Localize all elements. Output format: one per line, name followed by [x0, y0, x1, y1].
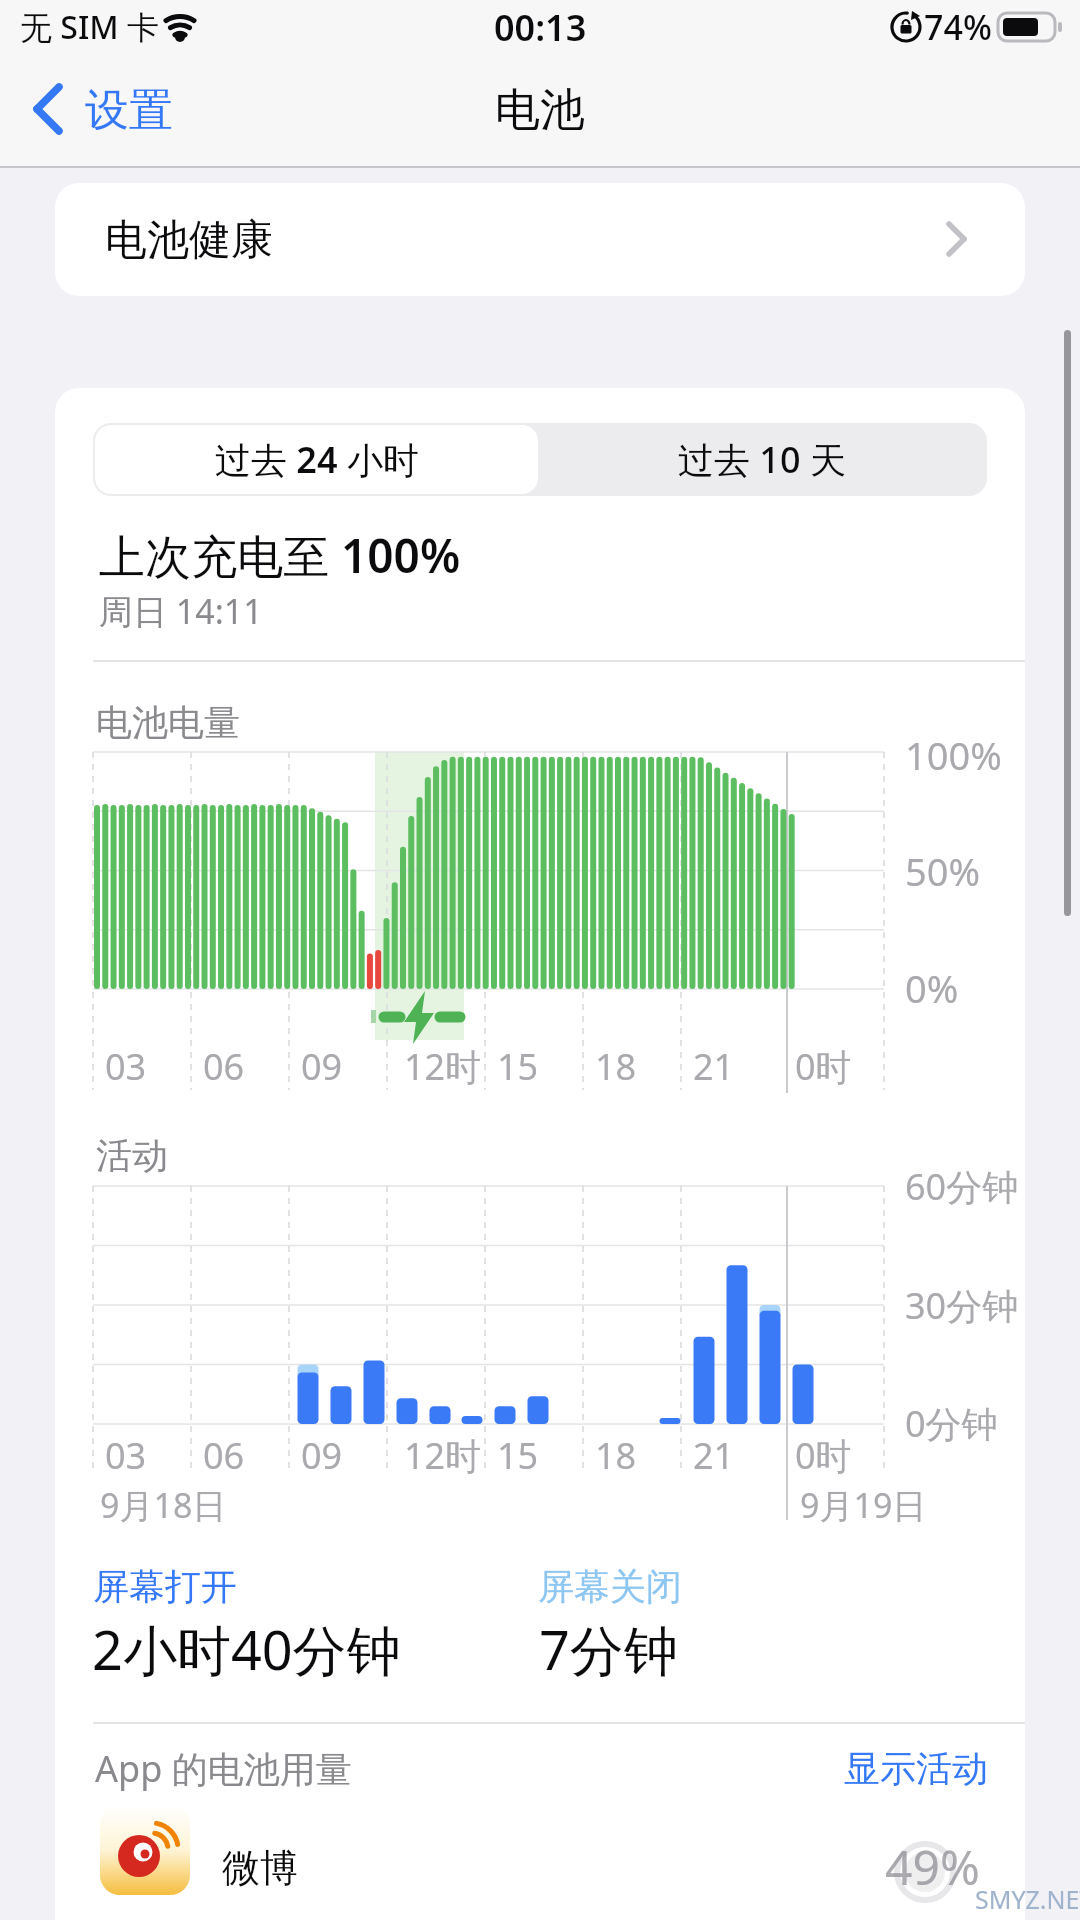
- staticText: 18: [595, 1042, 637, 1091]
- staticText: 显示活动: [844, 1746, 988, 1791]
- staticText: 00:13: [494, 3, 587, 52]
- staticText: 0%: [905, 962, 959, 1014]
- staticText: 100%: [905, 729, 1002, 781]
- staticText: 微博: [222, 1844, 298, 1892]
- staticText: 过去 10 天: [678, 435, 846, 484]
- staticText: 9月19日: [800, 1482, 927, 1528]
- staticText: 电池电量: [96, 700, 240, 745]
- staticText: 周日 14:11: [99, 588, 263, 634]
- staticText: 屏幕关闭: [538, 1564, 682, 1609]
- staticText: 30分钟: [905, 1281, 1019, 1330]
- button[interactable]: [95, 425, 538, 494]
- staticText: 50%: [905, 845, 981, 897]
- staticText: 60分钟: [905, 1162, 1019, 1211]
- staticText: 21: [693, 1431, 735, 1480]
- button[interactable]: [55, 183, 1025, 296]
- staticText: 15: [497, 1431, 539, 1480]
- staticText: 49%: [885, 1834, 980, 1899]
- staticText: 屏幕打开: [93, 1564, 237, 1609]
- staticText: 03: [105, 1431, 147, 1480]
- staticText: 0时: [795, 1042, 852, 1091]
- staticText: 18: [595, 1431, 637, 1480]
- button[interactable]: 显示活动: [810, 1737, 988, 1799]
- staticText: 设置: [85, 83, 173, 138]
- staticText: 15: [497, 1042, 539, 1091]
- staticText: 2小时40分钟: [92, 1612, 401, 1686]
- button[interactable]: [25, 80, 195, 140]
- staticText: 06: [203, 1042, 245, 1091]
- staticText: 上次充电至 100%: [99, 524, 461, 587]
- staticText: 无 SIM 卡: [20, 5, 159, 49]
- button[interactable]: [55, 1790, 1025, 1920]
- staticText: 0分钟: [905, 1399, 998, 1448]
- staticText: 电池: [495, 82, 585, 139]
- staticText: 0时: [795, 1431, 852, 1480]
- staticText: 21: [693, 1042, 735, 1091]
- staticText: 7分钟: [539, 1612, 678, 1686]
- staticText: 74%: [924, 4, 992, 50]
- staticText: 12时: [404, 1431, 482, 1480]
- staticText: App 的电池用量: [95, 1744, 352, 1793]
- staticText: 06: [203, 1431, 245, 1480]
- staticText: SMYZ.NET: [975, 1882, 1080, 1916]
- staticText: 12时: [404, 1042, 482, 1091]
- staticText: 03: [105, 1042, 147, 1091]
- staticText: 活动: [96, 1133, 168, 1178]
- staticText: 过去 24 小时: [215, 435, 419, 484]
- staticText: 09: [301, 1431, 343, 1480]
- button[interactable]: [538, 425, 985, 494]
- staticText: 09: [301, 1042, 343, 1091]
- staticText: 9月18日: [100, 1482, 227, 1528]
- staticText: 电池健康: [105, 214, 273, 267]
